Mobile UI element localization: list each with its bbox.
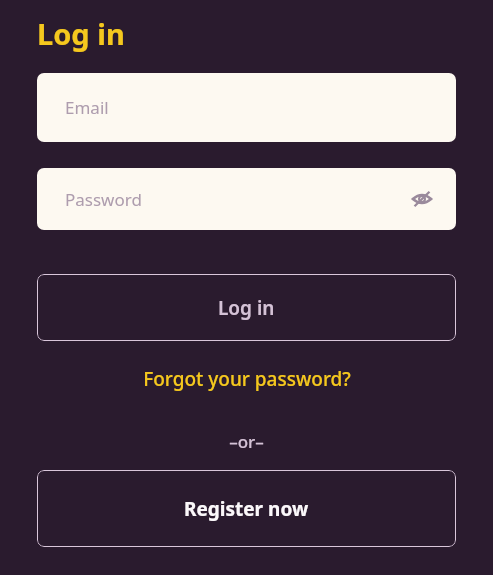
staticText: Log in bbox=[37, 14, 125, 53]
staticText: Email bbox=[65, 96, 109, 119]
button[interactable]: Show password bbox=[406, 183, 438, 215]
staticText: Password bbox=[65, 188, 142, 211]
button[interactable]: Forgot your password? bbox=[37, 366, 456, 392]
button[interactable]: Email bbox=[37, 73, 456, 142]
button[interactable]: Password bbox=[37, 168, 456, 230]
button[interactable]: Register now bbox=[37, 470, 456, 547]
staticText: Forgot your password? bbox=[143, 366, 351, 392]
staticText: Log in bbox=[218, 295, 275, 321]
staticText: –or– bbox=[229, 430, 264, 453]
staticText: Register now bbox=[184, 496, 309, 522]
button[interactable]: Log in bbox=[37, 274, 456, 341]
